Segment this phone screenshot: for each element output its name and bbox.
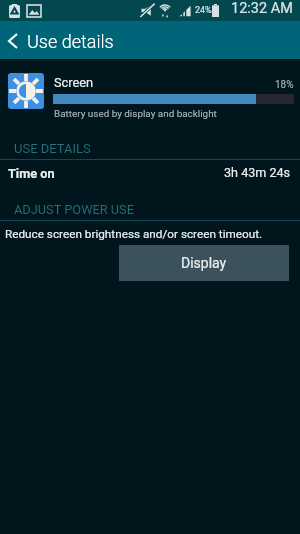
button[interactable]: Display [119,245,289,281]
staticText: 24% [195,5,212,16]
staticText: Time on [8,166,55,181]
button[interactable]: Time on [0,161,300,187]
staticText: 18% [275,79,294,91]
staticText: Reduce screen brightness and/or screen t… [5,227,263,241]
staticText: Use details [27,31,114,52]
staticText: Display [181,255,227,271]
button[interactable]: Back [0,21,26,59]
staticText: 3h 43m 24s [224,165,291,180]
staticText: Screen [54,75,94,90]
staticText: Battery used by display and backlight [54,108,217,120]
staticText: 12:32 AM [231,0,293,17]
staticText: ADJUST POWER USE [14,202,134,217]
staticText: USE DETAILS [14,141,91,156]
